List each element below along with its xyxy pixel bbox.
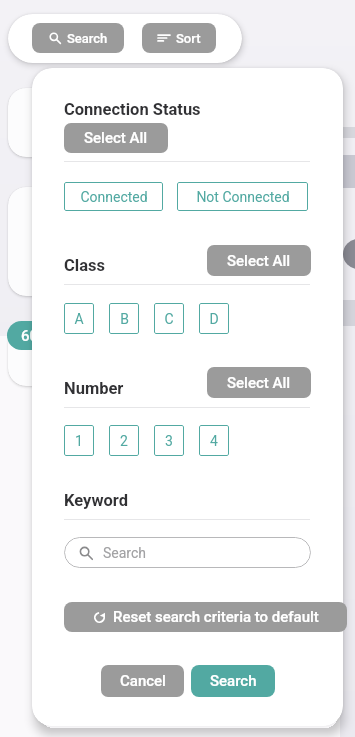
staticText: 1 <box>75 433 83 449</box>
staticText: B <box>120 311 129 327</box>
staticText: Number <box>64 379 124 398</box>
button[interactable]: D <box>199 303 229 334</box>
staticText: Search <box>67 31 108 46</box>
staticText: Class <box>64 256 105 275</box>
staticText: Reset search criteria to default <box>113 608 319 626</box>
button[interactable]: Select All <box>207 367 311 398</box>
button[interactable]: Connected <box>64 182 163 211</box>
button[interactable]: A <box>64 303 94 334</box>
button[interactable]: Select All <box>207 245 311 276</box>
staticText: Search <box>210 672 257 690</box>
staticText: 3 <box>165 433 173 449</box>
button[interactable]: Cancel <box>101 665 184 697</box>
button[interactable]: 1 <box>64 425 94 456</box>
staticText: Not Connected <box>196 189 290 205</box>
button[interactable]: Sort <box>142 23 216 53</box>
staticText: D <box>209 311 219 327</box>
button[interactable]: Reset search criteria to default <box>64 602 347 632</box>
button[interactable]: Search <box>64 537 311 568</box>
staticText: 4 <box>210 433 218 449</box>
staticText: Select All <box>227 374 291 392</box>
staticText: Sort <box>176 31 201 46</box>
staticText: Cancel <box>120 672 166 690</box>
staticText: C <box>164 311 174 327</box>
staticText: A <box>74 311 84 327</box>
button[interactable]: Search <box>32 23 124 53</box>
button[interactable]: C <box>154 303 184 334</box>
staticText: 60 <box>21 327 39 345</box>
button[interactable]: 2 <box>109 425 139 456</box>
button[interactable]: Not Connected <box>177 182 308 211</box>
staticText: Connection Status <box>64 100 201 119</box>
staticText: 2 <box>120 433 128 449</box>
button[interactable]: 4 <box>199 425 229 456</box>
button[interactable]: 3 <box>154 425 184 456</box>
staticText: Connected <box>80 189 148 205</box>
staticText: Select All <box>227 252 291 270</box>
staticText: Select All <box>84 129 148 147</box>
button[interactable]: Select All <box>64 123 168 153</box>
staticText: Keyword <box>64 491 129 510</box>
staticText: Search <box>103 545 147 561</box>
button[interactable]: Search <box>191 665 275 697</box>
button[interactable]: B <box>109 303 139 334</box>
